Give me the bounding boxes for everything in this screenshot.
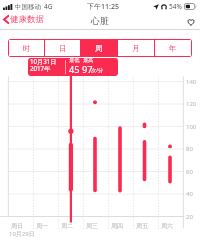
button[interactable]: 10月31日 <box>28 58 118 76</box>
staticText: 周日 <box>11 222 23 230</box>
staticText: 时 <box>23 44 31 53</box>
staticText: 周二 <box>61 222 73 230</box>
staticText: 120 <box>186 100 197 108</box>
staticText: 140 <box>186 78 197 86</box>
button[interactable]: 周 <box>81 40 117 56</box>
staticText: 下午11:25 <box>87 2 119 12</box>
staticText: 次/分 <box>91 66 104 73</box>
staticText: 年 <box>169 44 177 53</box>
button[interactable]: 时 <box>9 40 44 56</box>
staticText: 周 <box>95 44 103 53</box>
staticText: 周三 <box>86 222 98 230</box>
staticText: 54% <box>169 2 182 11</box>
button[interactable]: Heart rate info <box>187 18 195 26</box>
staticText: 10月31日 <box>30 58 57 65</box>
staticText: 45 <box>69 63 80 76</box>
staticText: 20 <box>186 213 193 221</box>
staticText: 2017年 <box>30 64 51 72</box>
staticText: 周一 <box>36 222 48 230</box>
staticText: 60 <box>186 168 193 176</box>
staticText: 80 <box>186 145 193 153</box>
staticText: 中国移动 <box>15 3 41 11</box>
staticText: 心脏 <box>91 15 109 26</box>
staticText: 40 <box>186 190 193 198</box>
staticText: 100 <box>186 123 197 131</box>
staticText: 周四 <box>111 222 123 230</box>
staticText: 月 <box>132 44 140 53</box>
staticText: 最低 <box>69 58 80 64</box>
staticText: 97 <box>82 63 93 76</box>
staticText: 周六 <box>161 222 173 230</box>
button[interactable]: 月 <box>118 40 154 56</box>
staticText: 周五 <box>136 222 148 230</box>
staticText: 健康数据 <box>10 14 44 25</box>
button[interactable]: 年 <box>155 40 191 56</box>
button[interactable]: 健康数据 <box>0 12 49 27</box>
staticText: 日 <box>59 44 67 53</box>
staticText: 10月29日 <box>9 230 35 238</box>
button[interactable]: 日 <box>45 40 80 56</box>
staticText: 4G <box>44 2 53 11</box>
staticText: 最高 <box>83 58 94 64</box>
